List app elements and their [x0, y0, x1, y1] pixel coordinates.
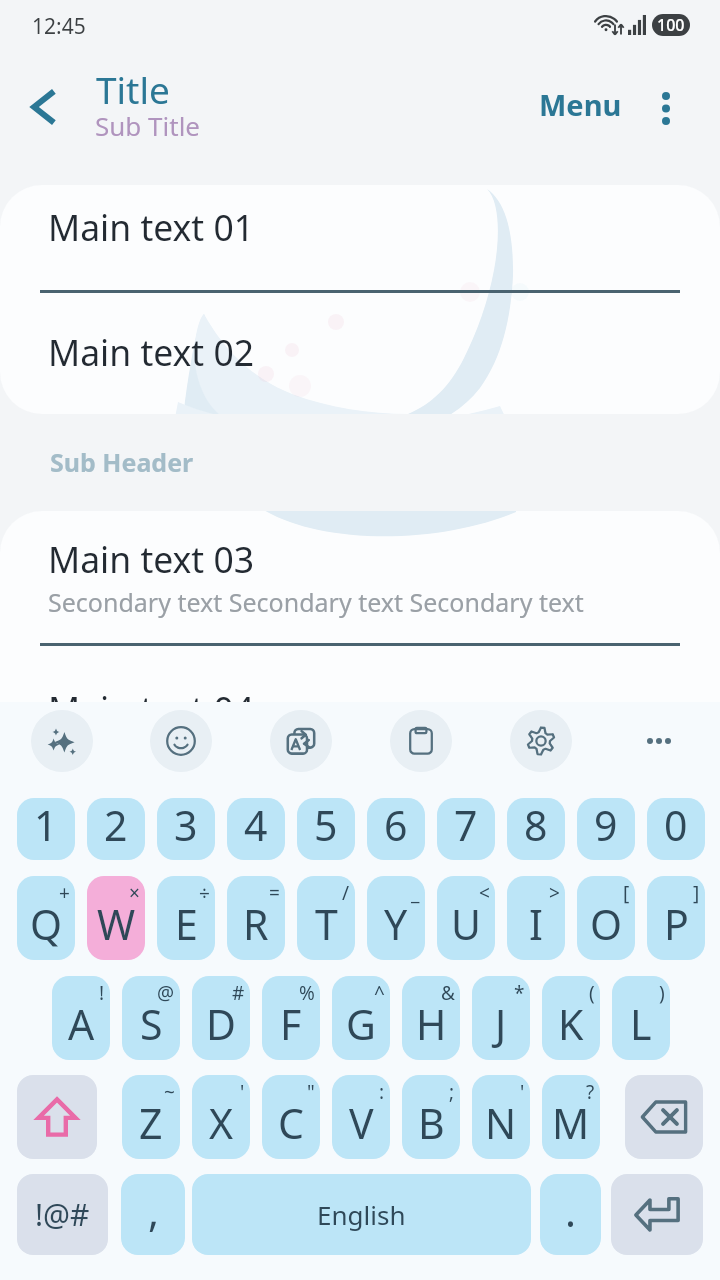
staticText: L — [630, 996, 652, 1052]
staticText: ' — [520, 1079, 525, 1105]
staticText: 6 — [384, 798, 408, 853]
button[interactable]: > — [507, 876, 565, 960]
staticText: M — [552, 1095, 590, 1151]
button[interactable] — [0, 644, 720, 761]
button[interactable]: Shift — [17, 1075, 97, 1159]
staticText: N — [485, 1095, 517, 1151]
button[interactable]: # — [192, 976, 250, 1060]
button[interactable]: ' — [192, 1075, 250, 1159]
button[interactable]: 7 — [437, 798, 495, 860]
button[interactable]: 6 — [367, 798, 425, 860]
button[interactable]: ( — [542, 976, 600, 1060]
staticText: < — [479, 880, 490, 906]
staticText: F — [280, 996, 302, 1052]
button[interactable]: / — [297, 876, 355, 960]
button[interactable]: Clipboard — [390, 710, 452, 772]
staticText: / — [342, 880, 350, 906]
staticText: 3 — [174, 798, 198, 853]
button[interactable]: & — [402, 976, 460, 1060]
button[interactable]: 5 — [297, 798, 355, 860]
button[interactable]: ÷ — [157, 876, 215, 960]
button[interactable]: , — [121, 1174, 185, 1255]
staticText: S — [140, 996, 163, 1052]
staticText: ; — [449, 1079, 455, 1105]
button[interactable]: 9 — [577, 798, 635, 860]
button[interactable] — [0, 185, 720, 291]
staticText: @ — [157, 980, 175, 1006]
button[interactable]: Menu — [531, 79, 630, 130]
button[interactable]: Sub Header — [38, 439, 206, 485]
button[interactable]: 4 — [227, 798, 285, 860]
staticText: ] — [693, 880, 700, 906]
staticText: : — [379, 1079, 385, 1105]
button[interactable]: < — [437, 876, 495, 960]
button[interactable]: ; — [402, 1075, 460, 1159]
button[interactable] — [0, 291, 720, 414]
button[interactable]: ! — [52, 976, 110, 1060]
staticText: C — [278, 1095, 304, 1151]
button[interactable]: ) — [612, 976, 670, 1060]
button[interactable]: 0 — [647, 798, 705, 860]
button[interactable]: 2 — [87, 798, 145, 860]
staticText: 2 — [104, 798, 128, 853]
button[interactable]: = — [227, 876, 285, 960]
staticText: 1 — [34, 798, 58, 853]
staticText: [ — [623, 880, 630, 906]
button[interactable]: " — [262, 1075, 320, 1159]
staticText: 9 — [594, 798, 618, 853]
button[interactable]: [ — [577, 876, 635, 960]
button[interactable]: ' — [472, 1075, 530, 1159]
staticText: Menu — [539, 85, 622, 124]
button[interactable]: 3 — [157, 798, 215, 860]
button[interactable]: @ — [122, 976, 180, 1060]
button[interactable]: Translate — [270, 710, 332, 772]
staticText: Title — [96, 64, 170, 114]
staticText: !@# — [35, 1194, 90, 1235]
staticText: Secondary text Secondary text Secondary … — [48, 585, 584, 619]
button[interactable]: !@# — [17, 1174, 108, 1255]
staticText: ^ — [374, 980, 385, 1006]
staticText: × — [129, 880, 140, 906]
staticText: * — [514, 980, 525, 1006]
button[interactable]: . — [540, 1174, 601, 1255]
button[interactable]: * — [472, 976, 530, 1060]
button[interactable]: ] — [647, 876, 705, 960]
button[interactable]: Enter — [611, 1174, 703, 1255]
button[interactable]: Back — [15, 78, 73, 136]
staticText: Z — [139, 1095, 163, 1151]
button[interactable]: More — [629, 711, 689, 771]
staticText: O — [590, 896, 623, 952]
staticText: E — [175, 896, 198, 952]
staticText: Main text 02 — [48, 328, 255, 376]
staticText: , — [148, 1183, 159, 1239]
button[interactable]: _ — [367, 876, 425, 960]
button[interactable]: Backspace — [625, 1075, 703, 1159]
staticText: T — [315, 896, 338, 952]
button[interactable]: Settings — [510, 710, 572, 772]
button[interactable]: ? — [542, 1075, 600, 1159]
staticText: Q — [30, 896, 63, 952]
button[interactable]: Emoji — [150, 710, 212, 772]
button[interactable]: English — [192, 1174, 531, 1255]
staticText: P — [664, 896, 689, 952]
button[interactable]: + — [17, 876, 75, 960]
staticText: I — [529, 896, 543, 952]
button[interactable]: % — [262, 976, 320, 1060]
staticText: _ — [411, 880, 420, 906]
button[interactable] — [0, 511, 720, 644]
staticText: ' — [240, 1079, 245, 1105]
button[interactable]: × — [87, 876, 145, 960]
button[interactable]: : — [332, 1075, 390, 1159]
button[interactable]: ~ — [122, 1075, 180, 1159]
button[interactable]: AI suggestions — [31, 710, 93, 772]
button[interactable]: ^ — [332, 976, 390, 1060]
staticText: Sub Title — [95, 108, 201, 143]
button[interactable]: 1 — [17, 798, 75, 860]
staticText: 8 — [524, 798, 548, 853]
staticText: = — [269, 880, 280, 906]
staticText: % — [299, 980, 315, 1006]
button[interactable]: 8 — [507, 798, 565, 860]
staticText: A — [68, 996, 95, 1052]
button[interactable]: More options — [637, 79, 695, 137]
staticText: Main text 03 — [48, 535, 255, 583]
